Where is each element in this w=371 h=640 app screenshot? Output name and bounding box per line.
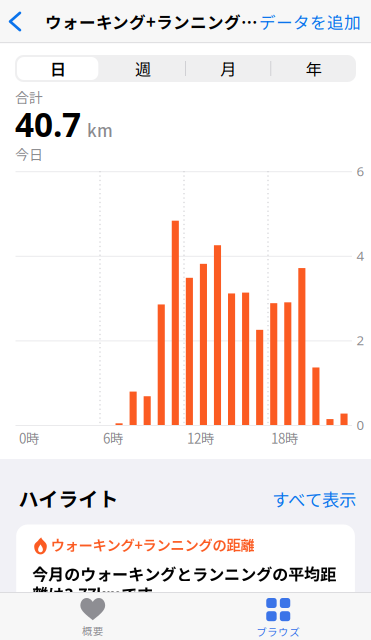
button[interactable]: ウォーキング+ランニングの距離 — [16, 524, 355, 604]
staticText: 概要 — [82, 623, 104, 638]
staticText: データを追加 — [259, 9, 361, 33]
staticText: 6 — [356, 162, 364, 180]
button[interactable]: 週 — [100, 55, 185, 82]
staticText: ウォーキング+ランニング… — [45, 9, 258, 33]
staticText: 離は3.77kmです — [32, 582, 153, 605]
staticText: すべて表示 — [272, 486, 356, 512]
staticText: 12時 — [187, 428, 214, 448]
staticText: 18時 — [271, 428, 298, 448]
staticText: 40.7 — [15, 102, 81, 146]
button[interactable]: 戻る — [0, 0, 30, 43]
button[interactable]: 年 — [271, 55, 356, 82]
staticText: 今月のウォーキングとランニングの平均距 — [32, 562, 336, 585]
staticText: ウォーキング+ランニングの距離 — [50, 534, 254, 555]
staticText: 0 — [356, 416, 364, 434]
staticText: ハイライト — [18, 483, 118, 512]
button[interactable]: データを追加 — [251, 0, 361, 43]
staticText: 日 — [50, 57, 66, 80]
button[interactable]: 月 — [185, 55, 271, 82]
button[interactable]: ブラウズ — [185, 598, 371, 640]
staticText: 月 — [220, 57, 236, 80]
staticText: 4 — [356, 247, 364, 264]
staticText: 6時 — [103, 428, 123, 448]
button[interactable]: 概要 — [0, 598, 185, 640]
button[interactable]: 日 — [15, 55, 100, 82]
staticText: 今日 — [15, 144, 43, 164]
staticText: 2 — [356, 331, 364, 349]
staticText: 週 — [135, 57, 151, 80]
staticText: 合計 — [15, 87, 43, 107]
staticText: km — [87, 118, 113, 142]
staticText: ブラウズ — [256, 624, 300, 639]
staticText: 0時 — [19, 428, 39, 448]
button[interactable]: すべて表示 — [246, 489, 356, 509]
staticText: 年 — [305, 57, 321, 80]
